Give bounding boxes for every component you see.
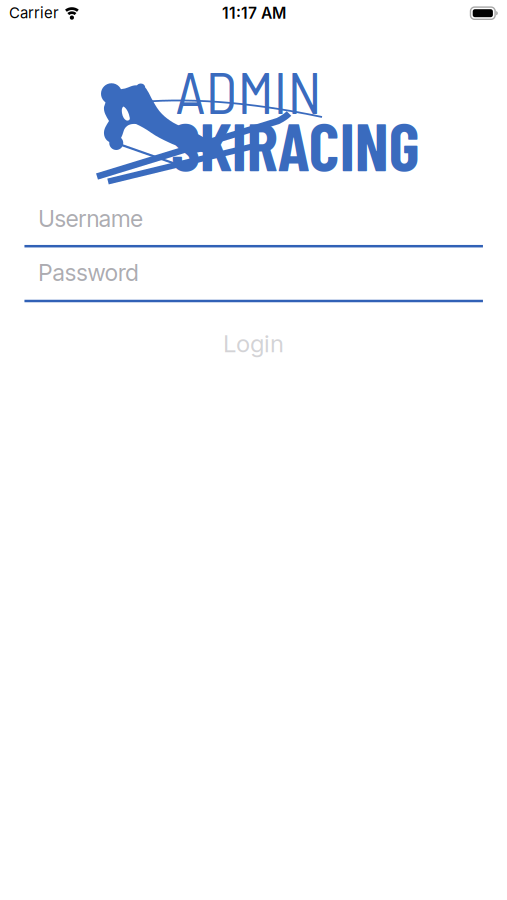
- staticText: Password: [38, 259, 139, 286]
- staticText: Login: [223, 329, 284, 358]
- staticText: ADMIN: [175, 55, 321, 126]
- textField[interactable]: Username: [38, 204, 482, 232]
- staticText: SKIRACING: [171, 105, 420, 184]
- staticText: 11:17 AM: [222, 4, 286, 22]
- staticText: Carrier: [9, 4, 59, 22]
- button[interactable]: Login: [215, 325, 292, 362]
- secureTextField[interactable]: Password: [38, 259, 482, 286]
- staticText: Username: [38, 204, 143, 232]
